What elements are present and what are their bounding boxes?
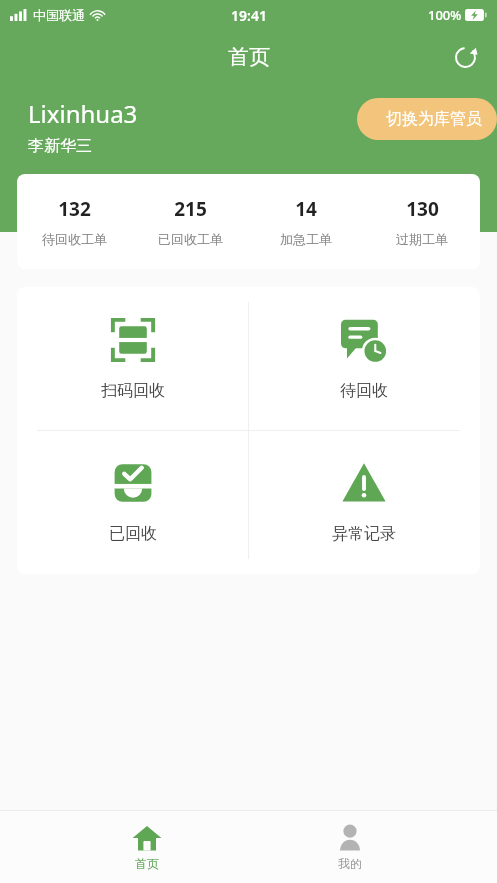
button[interactable]: 215 <box>132 196 248 247</box>
staticText: 待回收 <box>340 381 388 401</box>
button[interactable]: 132 <box>17 196 132 247</box>
staticText: 中国联通 <box>33 7 85 23</box>
staticText: 异常记录 <box>332 524 396 544</box>
button[interactable]: 我的 <box>295 823 405 871</box>
staticText: Lixinhua3 <box>28 97 138 130</box>
button[interactable]: 130 <box>364 196 480 247</box>
staticText: 19:41 <box>231 6 267 25</box>
staticText: 华创应用 · HUACHUANGZS.COM <box>101 836 396 863</box>
staticText: 130 <box>406 196 439 222</box>
staticText: 132 <box>58 196 91 222</box>
staticText: 14 <box>295 196 317 222</box>
staticText: 已回收工单 <box>158 231 223 247</box>
button[interactable]: 异常记录 <box>248 430 480 574</box>
button[interactable]: Refresh <box>447 39 483 75</box>
button[interactable]: 切换为库管员 <box>357 98 497 140</box>
button[interactable]: 扫码回收 <box>17 287 248 430</box>
staticText: 215 <box>174 196 207 222</box>
staticText: 待回收工单 <box>42 231 107 247</box>
staticText: 加急工单 <box>280 231 332 247</box>
staticText: 扫码回收 <box>101 381 165 401</box>
button[interactable]: 14 <box>248 196 364 247</box>
staticText: 首页 <box>135 856 159 871</box>
staticText: 我的 <box>338 856 362 871</box>
staticText: 李新华三 <box>28 136 92 156</box>
button[interactable]: 待回收 <box>248 287 480 430</box>
staticText: 首页 <box>228 44 270 70</box>
staticText: 已回收 <box>109 524 157 544</box>
button[interactable]: 首页 <box>92 823 202 871</box>
staticText: 100% <box>428 6 462 24</box>
staticText: 过期工单 <box>396 231 448 247</box>
button[interactable]: 已回收 <box>17 430 248 574</box>
staticText: 切换为库管员 <box>386 109 482 129</box>
